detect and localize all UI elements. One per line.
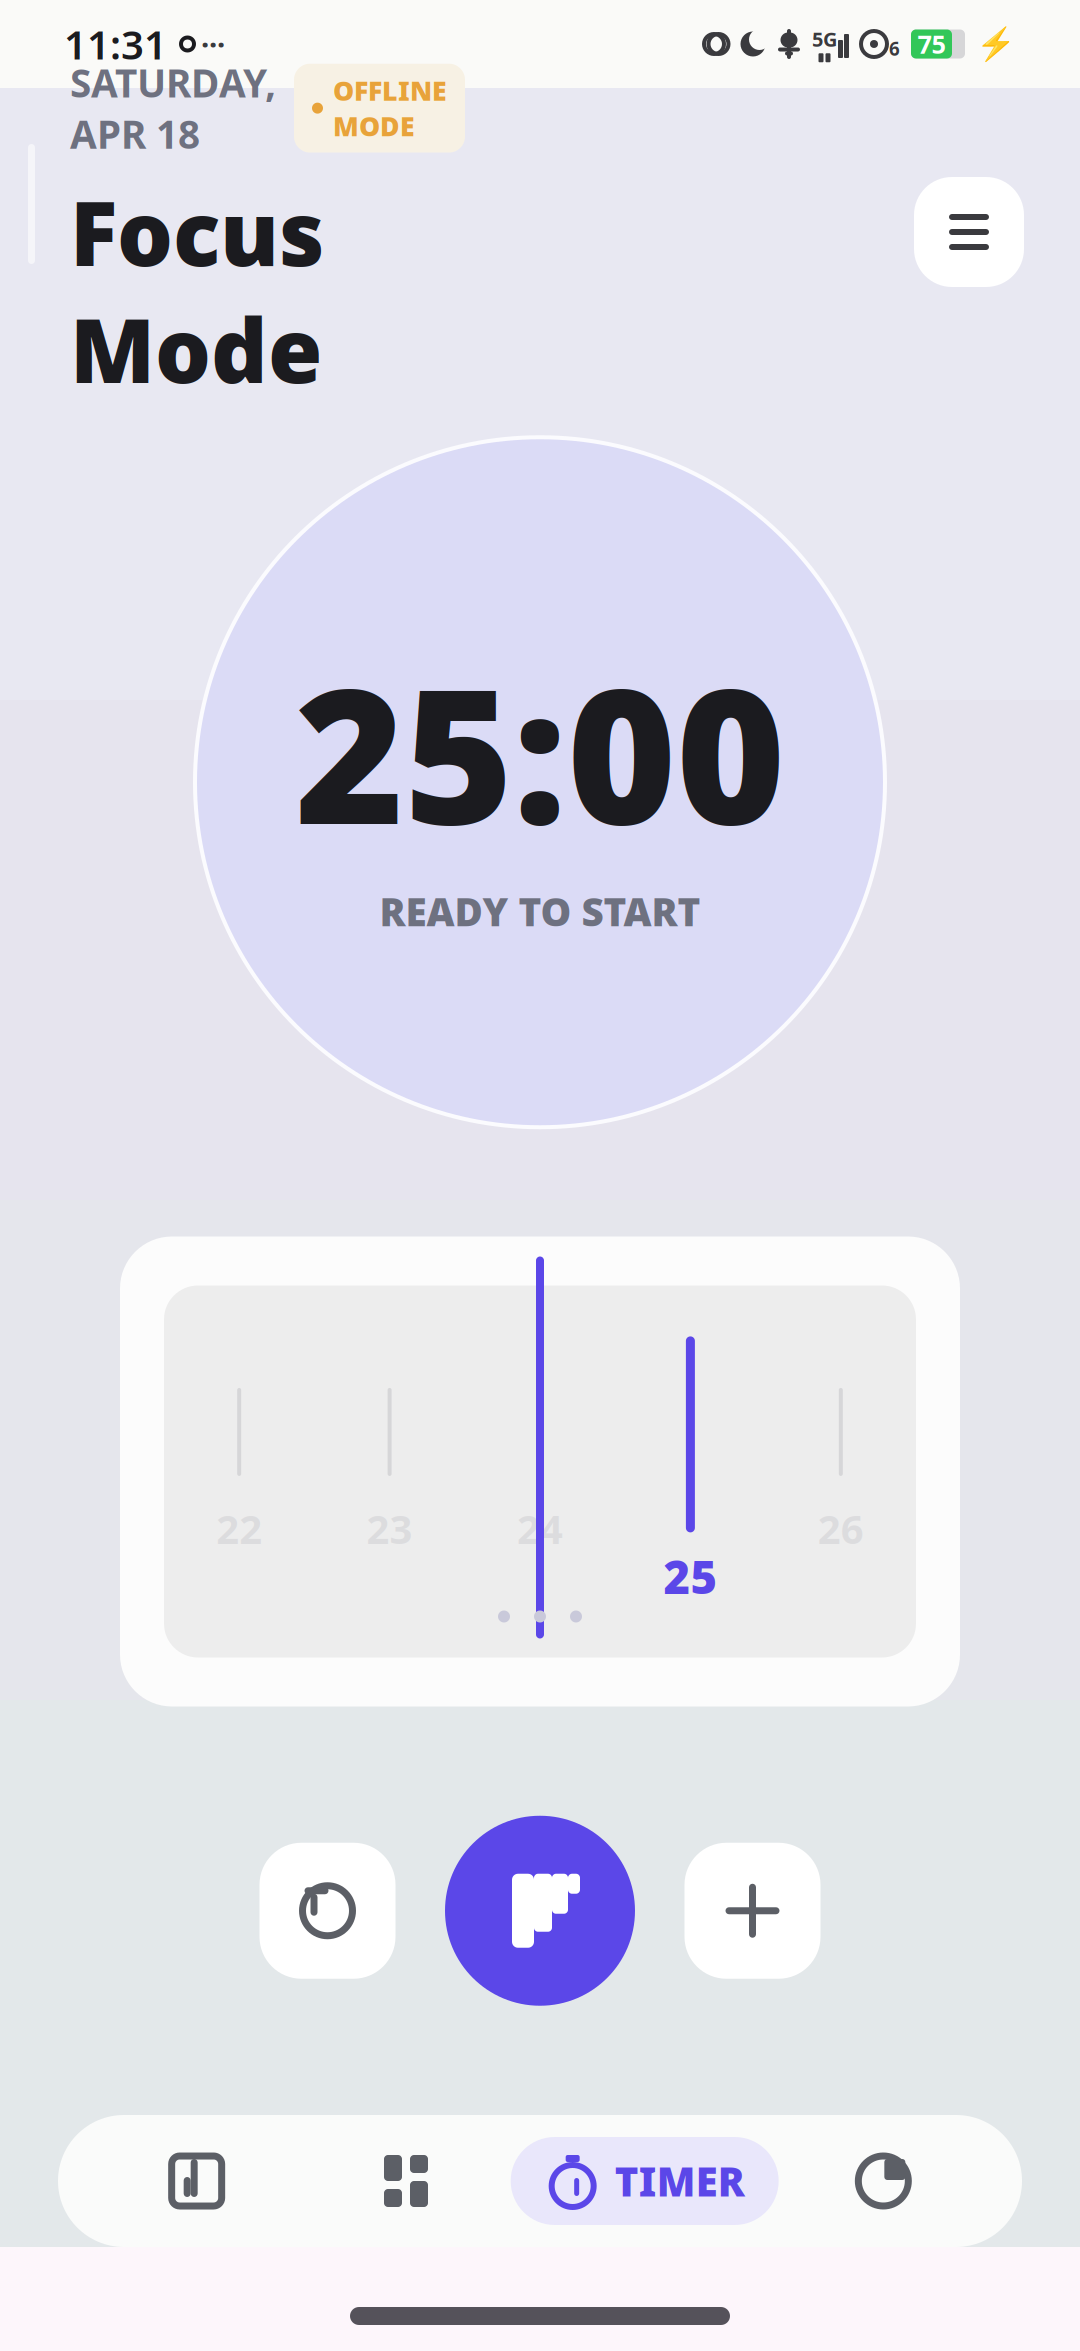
- button[interactable]: Reset: [259, 1843, 395, 1979]
- button[interactable]: TIMER: [511, 2137, 779, 2225]
- button[interactable]: Tasks: [92, 2153, 301, 2209]
- button[interactable]: Start: [445, 1816, 635, 2006]
- button[interactable]: Cancel: [684, 1843, 820, 1979]
- staticText: 11:31: [64, 17, 167, 70]
- staticText: OFFLINE MODE: [333, 73, 447, 143]
- staticText: ···: [201, 24, 225, 63]
- staticText: 6: [889, 36, 900, 61]
- staticText: 5G: [812, 26, 837, 52]
- staticText: SATURDAY, APR 18: [70, 57, 276, 159]
- staticText: 25: [663, 1546, 717, 1607]
- staticText: 26: [818, 1502, 864, 1555]
- staticText: 75: [917, 27, 945, 61]
- staticText: TIMER: [615, 2154, 745, 2207]
- button[interactable]: Dashboard: [301, 2153, 511, 2209]
- button[interactable]: Stats: [779, 2153, 988, 2209]
- staticText: READY TO START: [379, 885, 700, 937]
- staticText: 23: [367, 1502, 413, 1555]
- staticText: 24: [517, 1502, 563, 1555]
- staticText: Focus Mode: [70, 173, 324, 407]
- button[interactable]: Menu: [914, 177, 1024, 287]
- staticText: 22: [216, 1502, 262, 1555]
- staticText: 25:00: [295, 628, 785, 875]
- staticText: ⚡: [976, 26, 1016, 62]
